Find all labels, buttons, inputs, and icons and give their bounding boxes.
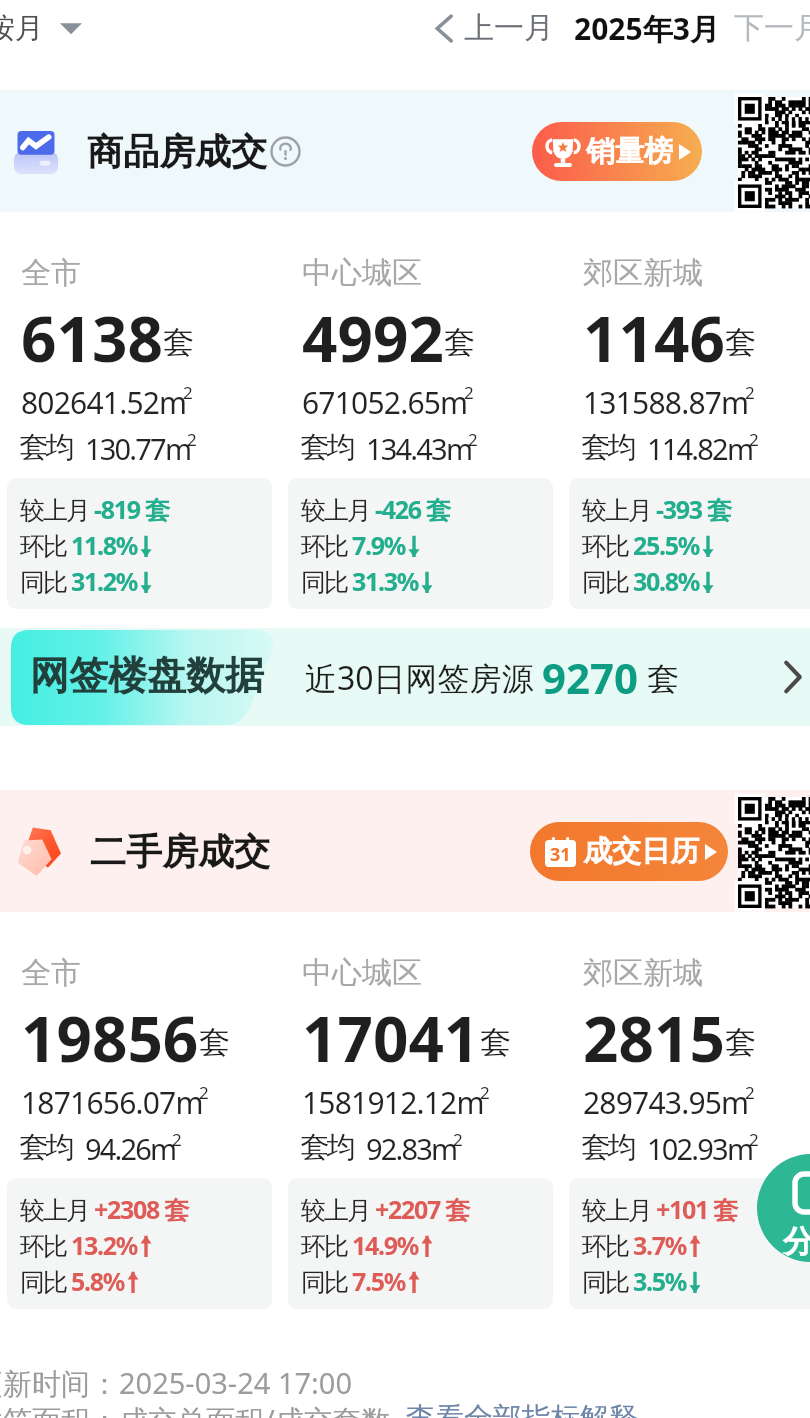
button[interactable]: 上一月 [432,1,558,55]
button[interactable]: 网签楼盘数据 [0,628,810,726]
staticText: 套均 [583,1129,635,1166]
button[interactable]: 二维码 [738,797,810,908]
staticText: 商品房成交 [87,129,267,174]
staticText: 套均 [302,1129,354,1166]
button[interactable]: 二手房成交 [14,825,270,877]
staticText: 下一月 [734,9,810,47]
staticText: 3.5% [633,1264,686,1298]
staticText: 同比 [20,564,71,598]
staticText: 套 [480,1023,511,1062]
staticText: 套 [199,1023,230,1062]
button[interactable]: 二维码 [738,97,810,208]
staticText: 2 [749,1128,759,1151]
staticText: +2207 套 [375,1192,469,1226]
staticText: +2308 套 [94,1192,188,1226]
staticText: 2025年3月 [574,8,720,49]
staticText: -819 套 [94,492,169,526]
staticText: 7.9% [352,528,405,562]
staticText: 二手房成交 [90,829,270,874]
button[interactable]: 销量榜 [532,122,702,181]
staticText: -393 套 [656,492,731,526]
staticText: 近30日网签房源 [305,656,542,700]
staticText: +101 套 [656,1192,737,1226]
staticText: 671052.65m [302,382,468,423]
staticText: 套 [725,1023,756,1062]
staticText: 1581912.12m [302,1082,484,1123]
staticText: 建筑面积；成交总面积/成交套数 [0,1400,406,1418]
staticText: 2 [480,1081,490,1104]
staticText: 环比 [582,1228,633,1262]
staticText: 较上月 [582,1192,656,1226]
staticText: 5.8% [71,1264,124,1298]
staticText: 套均 [21,1129,73,1166]
staticText: -426 套 [375,492,450,526]
staticText: 较上月 [301,492,375,526]
staticText: 同比 [582,564,633,598]
staticText: 套 [163,323,194,362]
staticText: 全市 [21,254,81,292]
staticText: 131588.87m [583,382,749,423]
staticText: 2 [745,381,755,404]
staticText: 114.82m [647,429,753,468]
staticText: 94.26m [85,1129,176,1168]
staticText: 郊区新城 [583,254,703,292]
staticText: 31.3% [352,564,418,598]
staticText: 环比 [20,1228,71,1262]
staticText: 成交日历 [583,833,699,870]
staticText: 全市 [21,954,81,992]
staticText: 130.77m [85,429,191,468]
button[interactable]: 按月 [0,2,90,55]
staticText: 环比 [20,528,71,562]
staticText: 郊区新城 [583,954,703,992]
staticText: 中心城区 [302,254,422,292]
staticText: 分享 [783,1222,810,1261]
staticText: 同比 [301,564,352,598]
staticText: 92.83m [366,1129,457,1168]
staticText: 102.93m [647,1129,753,1168]
staticText: 802641.52m [21,382,187,423]
button[interactable]: 31 [530,822,728,881]
staticText: 更新时间：2025-03-24 17:00 [0,1363,353,1403]
staticText: 中心城区 [302,954,422,992]
staticText: 环比 [301,1228,352,1262]
staticText: 4992 [302,296,444,380]
button[interactable]: 商品房成交 [14,129,301,174]
staticText: 环比 [582,528,633,562]
staticText: 30.8% [633,564,699,598]
staticText: 9270 [542,649,639,706]
staticText: 较上月 [582,492,656,526]
staticText: 按月 [0,10,44,47]
staticText: 套 [444,323,475,362]
staticText: 2 [749,428,759,451]
button[interactable]: 分享 [757,1154,810,1262]
staticText: 同比 [301,1264,352,1298]
staticText: 较上月 [301,1192,375,1226]
staticText: 同比 [582,1264,633,1298]
staticText: 查看全部指标解释 [406,1400,638,1418]
staticText: 3.7% [633,1228,686,1262]
staticText: 套 [639,656,680,700]
staticText: 289743.95m [583,1082,749,1123]
button[interactable]: 下一月 [730,1,810,55]
staticText: 套均 [21,429,73,466]
staticText: 2 [468,428,478,451]
staticText: 2 [464,381,474,404]
staticText: 2 [172,1128,182,1151]
staticText: 1146 [583,296,725,380]
staticText: 2 [453,1128,463,1151]
staticText: 套 [725,323,756,362]
staticText: 13.2% [71,1228,137,1262]
staticText: 31 [550,842,571,867]
staticText: 19856 [21,996,199,1080]
staticText: 环比 [301,528,352,562]
staticText: 1871656.07m [21,1082,203,1123]
staticText: 2815 [583,996,725,1080]
staticText: 同比 [20,1264,71,1298]
staticText: 2 [199,1081,209,1104]
staticText: 17041 [302,996,480,1080]
staticText: 7.5% [352,1264,405,1298]
staticText: 14.9% [352,1228,418,1262]
staticText: 31.2% [71,564,137,598]
staticText: 销量榜 [586,133,673,170]
staticText: 134.43m [366,429,472,468]
